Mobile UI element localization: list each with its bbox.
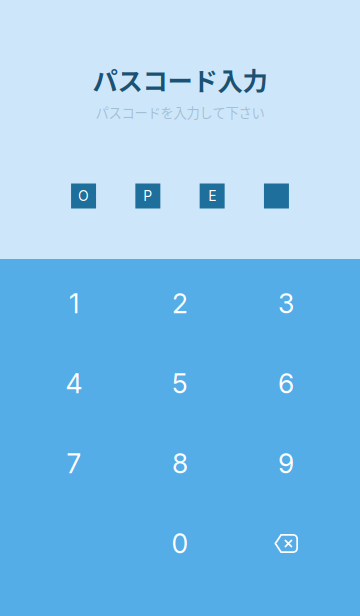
staticText: 3 bbox=[278, 287, 294, 320]
button[interactable]: Delete bbox=[233, 503, 339, 583]
staticText: パスコードを入力して下さい bbox=[95, 102, 264, 122]
button[interactable]: 3 bbox=[233, 263, 339, 343]
staticText: 9 bbox=[278, 447, 294, 480]
button[interactable]: 6 bbox=[233, 343, 339, 423]
staticText: 6 bbox=[278, 367, 294, 400]
staticText: 8 bbox=[172, 447, 188, 480]
button[interactable]: 4 bbox=[21, 343, 127, 423]
button[interactable]: 9 bbox=[233, 423, 339, 503]
button[interactable]: 0 bbox=[127, 503, 233, 583]
button[interactable]: 8 bbox=[127, 423, 233, 503]
staticText: 0 bbox=[171, 527, 188, 560]
button[interactable]: 2 bbox=[127, 263, 233, 343]
staticText: 7 bbox=[66, 447, 81, 480]
staticText: 4 bbox=[65, 367, 82, 400]
staticText: パスコード入力 bbox=[92, 61, 267, 98]
staticText: P bbox=[143, 187, 152, 204]
staticText: O bbox=[78, 187, 89, 204]
button[interactable]: 7 bbox=[21, 423, 127, 503]
button[interactable]: 1 bbox=[21, 263, 127, 343]
staticText: 2 bbox=[172, 287, 188, 320]
staticText: E bbox=[208, 187, 216, 204]
button[interactable]: 5 bbox=[127, 343, 233, 423]
staticText: 5 bbox=[172, 367, 188, 400]
staticText: 1 bbox=[69, 287, 79, 320]
